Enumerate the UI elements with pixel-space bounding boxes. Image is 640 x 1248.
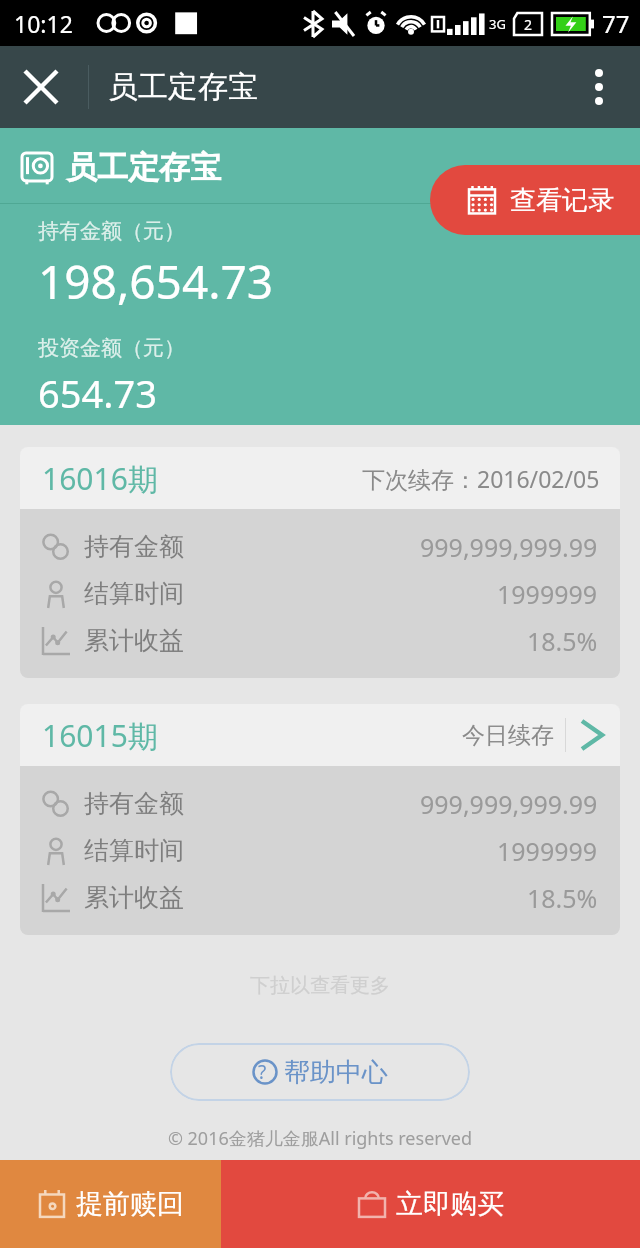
staticText: 立即购买: [396, 1187, 504, 1221]
staticText: 持有金额: [84, 788, 184, 819]
staticText: 累计收益: [84, 882, 184, 913]
button[interactable]: 16016期: [20, 447, 620, 678]
staticText: 16016期: [42, 458, 158, 499]
staticText: 2: [524, 15, 533, 34]
staticText: 投资金额（元）: [38, 335, 185, 361]
staticText: 16015期: [42, 715, 158, 756]
staticText: © 2016金猪儿金服All rights reserved: [0, 1126, 640, 1151]
staticText: 员工定存宝: [66, 148, 221, 187]
staticText: ?: [258, 1059, 267, 1085]
staticText: 今日续存: [462, 721, 554, 750]
button[interactable]: 帮助中心: [170, 1043, 470, 1101]
staticText: 员工定存宝: [108, 68, 258, 106]
staticText: 结算时间: [84, 578, 184, 609]
button[interactable]: 查看记录: [430, 165, 640, 235]
staticText: 999,999,999.99: [420, 787, 598, 821]
staticText: 654.73: [38, 367, 157, 419]
staticText: 提前赎回: [76, 1187, 184, 1221]
staticText: 持有金额（元）: [38, 218, 185, 244]
staticText: 77: [602, 7, 630, 40]
staticText: 持有金额: [84, 531, 184, 562]
staticText: 1999999: [497, 834, 598, 868]
staticText: 累计收益: [84, 625, 184, 656]
staticText: 198,654.73: [38, 250, 274, 313]
staticText: 帮助中心: [284, 1056, 388, 1089]
button[interactable]: More options: [558, 46, 640, 128]
staticText: 下拉以查看更多: [0, 973, 640, 998]
staticText: 1999999: [497, 577, 598, 611]
staticText: 查看记录: [510, 184, 614, 217]
staticText: 结算时间: [84, 835, 184, 866]
button[interactable]: Close: [0, 46, 82, 128]
staticText: 999,999,999.99: [420, 530, 598, 564]
staticText: 18.5%: [527, 881, 598, 915]
button[interactable]: 提前赎回: [0, 1160, 221, 1248]
staticText: 下次续存：2016/02/05: [362, 463, 600, 494]
staticText: 18.5%: [527, 624, 598, 658]
staticText: 3G: [489, 15, 506, 33]
button[interactable]: 立即购买: [221, 1160, 640, 1248]
staticText: 10:12: [14, 8, 73, 39]
button[interactable]: 16015期: [20, 704, 620, 935]
